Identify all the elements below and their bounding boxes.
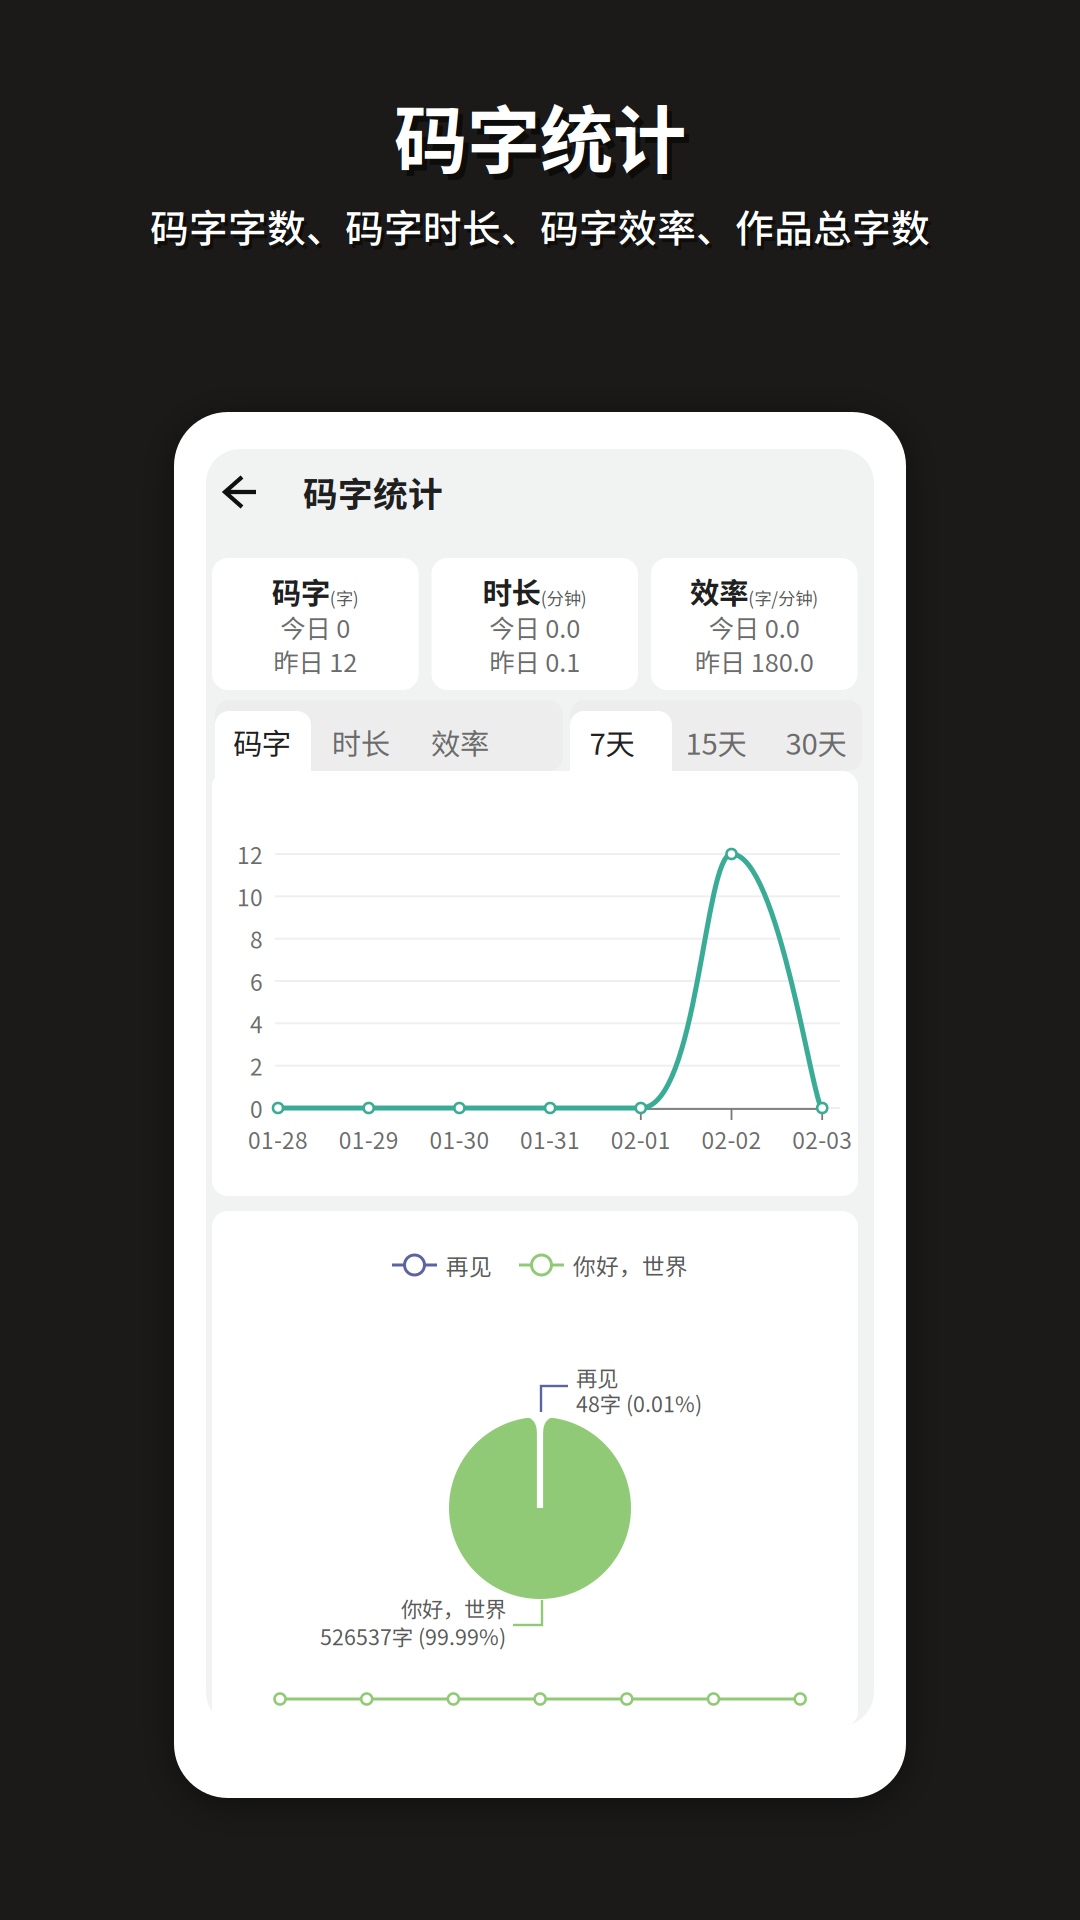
staticText: (分钟) xyxy=(541,585,587,610)
staticText: (字) xyxy=(330,585,359,610)
staticText: 昨日 180.0 xyxy=(695,643,814,679)
staticText: 码字字数、码字时长、码字效率、作品总字数 xyxy=(153,202,933,258)
button[interactable]: 7天 xyxy=(562,718,662,766)
button[interactable]: 时长 xyxy=(431,558,638,690)
staticText: 码字 xyxy=(233,721,291,763)
staticText: 01-29 xyxy=(339,1123,399,1155)
staticText: 0 xyxy=(250,1092,263,1124)
staticText: 时长 xyxy=(332,721,390,763)
staticText: 30天 xyxy=(785,721,846,763)
staticText: 今日 0 xyxy=(280,609,350,645)
button[interactable]: 码字 xyxy=(212,558,418,690)
staticText: 4 xyxy=(250,1007,263,1040)
staticText: 码字字数、码字时长、码字效率、作品总字数 xyxy=(150,198,930,254)
staticText: 10 xyxy=(237,880,263,913)
staticText: 码字统计 xyxy=(303,467,443,517)
button[interactable]: 你好，世界 xyxy=(519,1249,688,1281)
button[interactable]: 返回 xyxy=(210,459,276,525)
staticText: 02-02 xyxy=(701,1123,761,1155)
button[interactable]: 再见 xyxy=(392,1249,492,1281)
staticText: 2 xyxy=(250,1049,263,1082)
staticText: 你好，世界 xyxy=(401,1593,506,1623)
staticText: 再见 xyxy=(576,1362,618,1392)
staticText: 昨日 12 xyxy=(273,643,357,679)
staticText: 48字 (0.01%) xyxy=(576,1388,702,1418)
staticText: 效率 xyxy=(690,570,748,612)
staticText: 时长 xyxy=(483,570,541,612)
staticText: 02-03 xyxy=(792,1123,852,1155)
staticText: 01-30 xyxy=(429,1123,489,1155)
button[interactable]: 码字 xyxy=(212,718,312,766)
staticText: 02-01 xyxy=(611,1123,671,1155)
button[interactable]: 码字统计 xyxy=(303,464,503,520)
button[interactable]: 效率 xyxy=(410,718,510,766)
button[interactable]: 时长 xyxy=(311,718,411,766)
button[interactable]: 效率 xyxy=(651,558,857,690)
staticText: 526537字 (99.99%) xyxy=(320,1621,506,1651)
staticText: 今日 0.0 xyxy=(489,609,580,645)
staticText: 01-28 xyxy=(248,1123,308,1155)
staticText: 01-31 xyxy=(520,1123,580,1155)
staticText: 你好，世界 xyxy=(573,1249,688,1281)
button[interactable]: 30天 xyxy=(766,718,866,766)
staticText: 15天 xyxy=(685,721,746,763)
staticText: 今日 0.0 xyxy=(709,609,800,645)
staticText: 效率 xyxy=(431,721,489,763)
staticText: 8 xyxy=(250,922,263,955)
staticText: 12 xyxy=(237,838,263,870)
button[interactable]: 15天 xyxy=(666,718,766,766)
staticText: 再见 xyxy=(446,1249,492,1281)
staticText: 昨日 0.1 xyxy=(489,643,580,679)
staticText: 码字 xyxy=(272,570,330,612)
staticText: 6 xyxy=(250,965,263,997)
staticText: 7天 xyxy=(589,721,634,763)
staticText: 码字统计 xyxy=(399,88,691,194)
staticText: (字/分钟) xyxy=(748,585,818,610)
staticText: 码字统计 xyxy=(394,82,686,188)
